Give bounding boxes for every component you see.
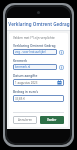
staticText: kenmerk.nl xyxy=(15,65,31,69)
staticText: 33,85 € xyxy=(15,97,25,101)
button[interactable]: 1 augustus 2023 xyxy=(13,79,64,86)
button[interactable]: Verder xyxy=(40,116,64,124)
staticText: Verklaring Omtrent Gedrag xyxy=(8,21,70,27)
staticText: Verder xyxy=(47,118,57,122)
staticText: Kenmerk xyxy=(13,59,28,63)
staticText: 1 augustus 2023 xyxy=(15,81,38,85)
staticText: vog - voor (natuurlijke) personen xyxy=(15,50,55,54)
staticText: Datum aangifte xyxy=(13,74,38,78)
button[interactable]: Meer informatie xyxy=(59,50,64,55)
button[interactable]: kenmerk.nl xyxy=(13,64,64,70)
staticText: Velden met (*) zijn verplichte velden xyxy=(13,36,64,40)
staticText: Verklaring Omtrent Gedrag xyxy=(13,44,56,48)
button[interactable]: vog - voor (natuurlijke) personen xyxy=(13,49,64,55)
staticText: Bedrag in euro's xyxy=(13,90,39,94)
button[interactable]: 33,85 € xyxy=(13,95,64,102)
staticText: Annuleren xyxy=(18,118,33,122)
other: Kies datum xyxy=(57,80,62,85)
button[interactable]: Annuleren xyxy=(13,116,37,124)
button[interactable]: Meer informatie xyxy=(59,65,64,70)
